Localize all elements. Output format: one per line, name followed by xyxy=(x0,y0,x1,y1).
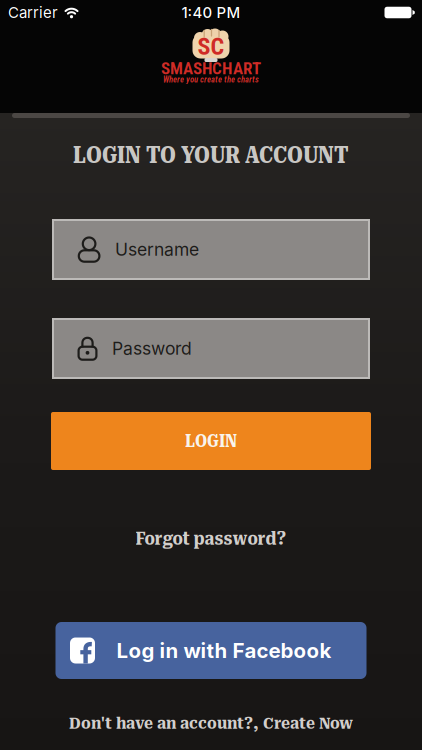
button[interactable]: Log in with Facebook xyxy=(55,622,366,679)
button[interactable]: Don't have an account?, Create Now xyxy=(69,712,353,734)
button[interactable]: Password xyxy=(52,318,370,379)
button[interactable]: Forgot password? xyxy=(135,526,286,551)
staticText: LOGIN TO YOUR ACCOUNT xyxy=(73,141,349,169)
button[interactable]: Username xyxy=(52,219,370,280)
staticText: Where you create the charts xyxy=(163,74,259,84)
staticText: Don't have an account?, Create Now xyxy=(69,713,353,733)
staticText: Log in with Facebook xyxy=(116,638,331,663)
staticText: Password xyxy=(112,338,192,359)
staticText: SMASHCHART xyxy=(161,58,261,78)
staticText: Forgot password? xyxy=(135,528,286,549)
button[interactable]: LOGIN xyxy=(51,412,371,470)
staticText: Username xyxy=(115,239,199,260)
staticText: 1:40 PM xyxy=(181,3,240,21)
staticText: Carrier xyxy=(8,3,58,21)
staticText: LOGIN xyxy=(185,431,237,451)
staticText: SC xyxy=(197,32,224,60)
